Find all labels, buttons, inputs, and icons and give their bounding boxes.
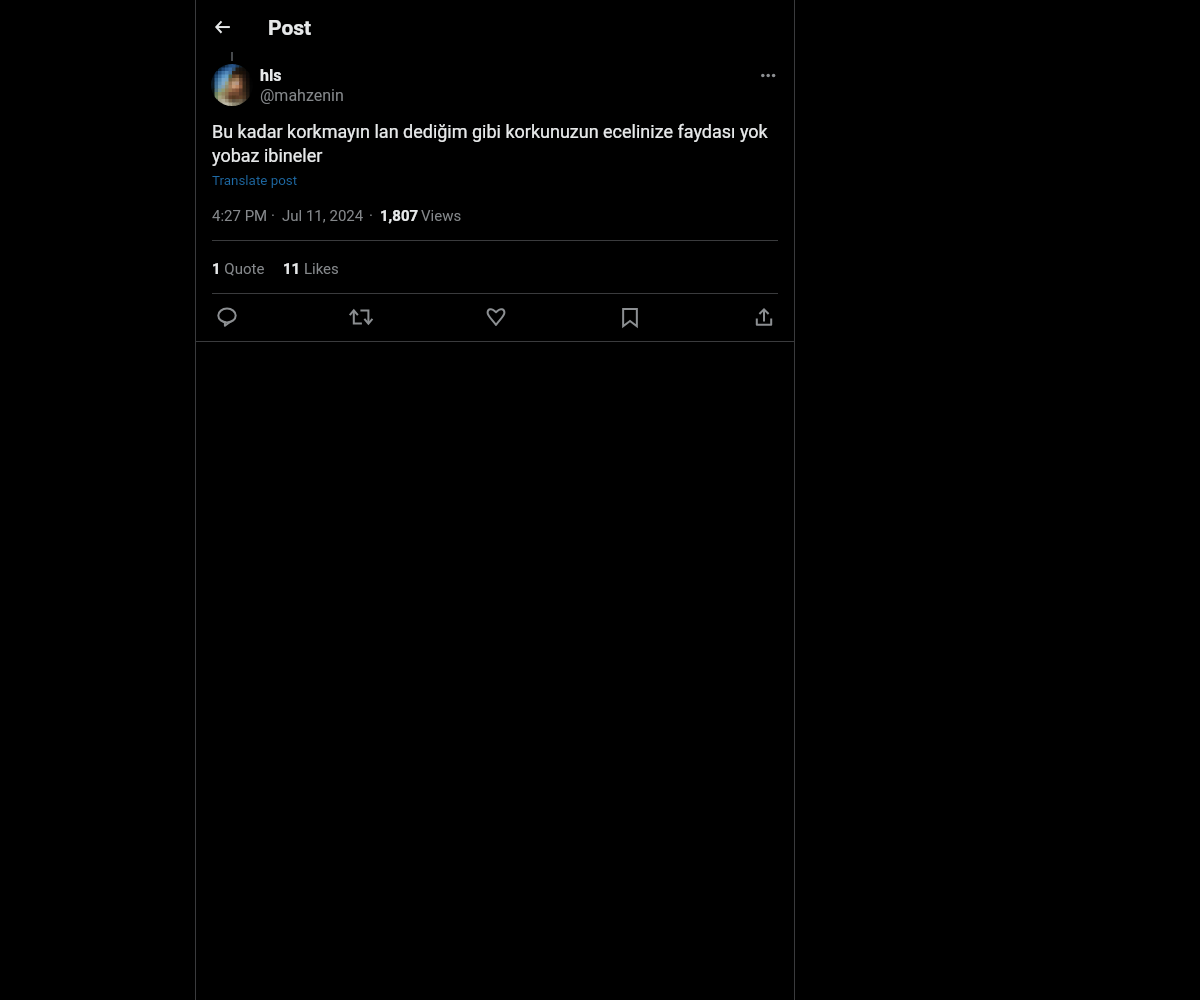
staticText: 11 Likes — [283, 260, 339, 278]
button[interactable]: Share — [747, 300, 781, 334]
button[interactable]: Bookmark — [613, 300, 647, 334]
staticText: @mahzenin — [260, 86, 344, 105]
staticText: Views — [421, 207, 462, 225]
button[interactable]: Back — [207, 12, 237, 42]
button[interactable]: 11 Likes — [283, 260, 339, 278]
button[interactable]: Profile photo — [211, 64, 253, 106]
staticText: 4:27 PM — [212, 207, 268, 225]
button[interactable]: More options — [750, 61, 780, 91]
button[interactable]: Translate post — [212, 173, 298, 189]
button[interactable]: @mahzenin — [260, 86, 344, 105]
button[interactable]: Repost — [344, 300, 378, 334]
button[interactable]: hls — [260, 66, 282, 85]
button[interactable]: Like — [479, 300, 513, 334]
staticText: Translate post — [212, 173, 298, 189]
staticText: 1,807 — [380, 207, 419, 225]
staticText: · — [369, 207, 373, 225]
staticText: hls — [260, 66, 282, 85]
staticText: 1 Quote — [212, 260, 265, 278]
staticText: · — [271, 207, 275, 225]
staticText: Jul 11, 2024 — [282, 207, 364, 225]
staticText: Post — [268, 16, 312, 41]
button[interactable]: 1 Quote — [212, 260, 265, 278]
staticText: Bu kadar korkmayın lan dediğim gibi kork… — [212, 119, 778, 167]
button[interactable]: Reply — [210, 300, 244, 334]
